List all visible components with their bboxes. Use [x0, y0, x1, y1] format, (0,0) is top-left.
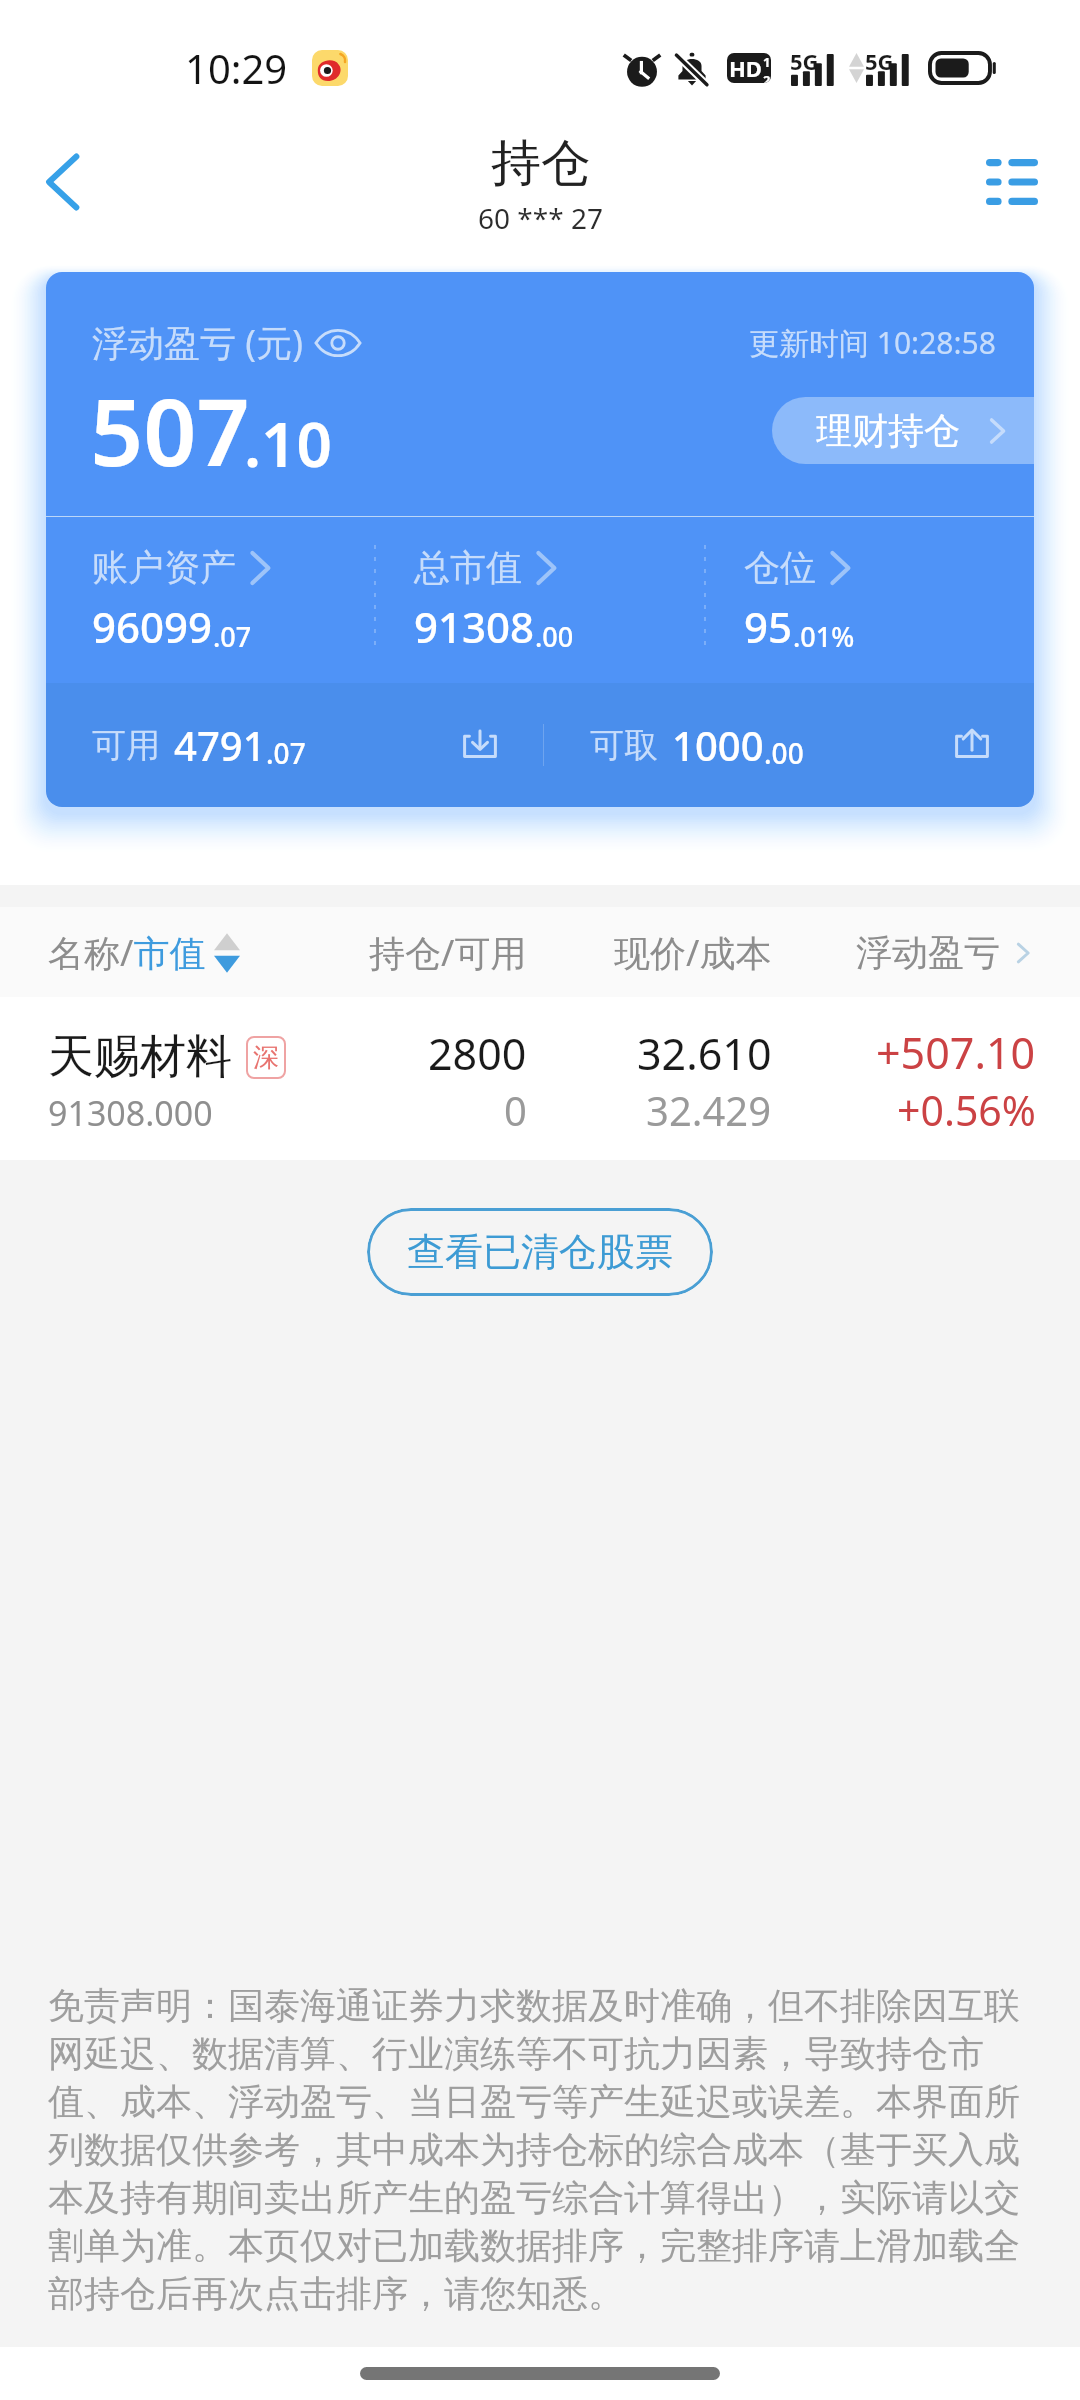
staticText: 账户资产 [92, 545, 236, 590]
staticText: 可取 [590, 724, 658, 767]
staticText: 持仓 [491, 132, 591, 195]
staticText: 浮动盈亏 (元) [92, 318, 303, 367]
staticText: 总市值 [414, 545, 522, 590]
staticText: 仓位 [744, 545, 816, 590]
staticText: 名称/市值 [48, 928, 206, 977]
staticText: 0 [504, 1083, 527, 1137]
staticText: 更新时间 10:28:58 [749, 322, 996, 363]
staticText: +0.56% [897, 1082, 1036, 1138]
staticText: 浮动盈亏 [856, 930, 1000, 975]
button[interactable]: Menu [964, 134, 1060, 230]
staticText: 60 *** 27 [478, 199, 603, 237]
button[interactable]: 总市值 [414, 545, 704, 655]
staticText: 天赐材料 [48, 1028, 232, 1086]
staticText: 96099 [92, 598, 213, 655]
button[interactable]: Deposit [458, 723, 502, 767]
staticText: 32.610 [637, 1024, 772, 1083]
staticText: .00 [535, 618, 574, 655]
button[interactable]: Withdraw [950, 723, 994, 767]
staticText: 95 [744, 598, 793, 655]
button[interactable]: 天赐材料 [0, 997, 1080, 1160]
staticText: 1 [763, 53, 771, 71]
staticText: 5G [865, 46, 894, 76]
staticText: 4791 [174, 718, 266, 772]
staticText: 免责声明：国泰海通证券力求数据及时准确，但不排除因互联网延迟、数据清算、行业演练… [48, 1983, 1036, 2317]
staticText: 507 [90, 367, 250, 494]
staticText: 深 [253, 1041, 279, 1074]
staticText: 可用 [92, 724, 160, 767]
staticText: 10:29 [185, 41, 288, 95]
staticText: 2 [763, 71, 771, 83]
staticText: .01% [793, 618, 855, 655]
button[interactable]: 浮动盈亏 [772, 930, 1036, 975]
staticText: 5G [790, 46, 819, 76]
staticText: 91308.000 [48, 1090, 213, 1136]
button[interactable]: 仓位 [744, 545, 1034, 655]
staticText: 理财持仓 [816, 408, 960, 453]
button[interactable]: 查看已清仓股票 [367, 1208, 713, 1296]
button[interactable]: Back [14, 134, 110, 230]
staticText: .07 [266, 734, 306, 772]
staticText: 2800 [428, 1024, 527, 1083]
staticText: 持仓/可用 [369, 928, 527, 977]
staticText: HD [729, 53, 762, 83]
staticText: 1000 [672, 718, 764, 772]
staticText: +507.10 [876, 1023, 1036, 1082]
staticText: 32.429 [646, 1083, 772, 1137]
button[interactable]: 账户资产 [92, 545, 374, 655]
staticText: 查看已清仓股票 [407, 1228, 673, 1276]
staticText: .10 [244, 401, 333, 485]
staticText: 91308 [414, 598, 535, 655]
staticText: .00 [764, 734, 804, 772]
button[interactable]: 名称/市值 [48, 928, 327, 977]
button[interactable]: 理财持仓 [772, 397, 1034, 464]
staticText: .07 [213, 618, 252, 655]
staticText: 现价/成本 [614, 928, 772, 977]
